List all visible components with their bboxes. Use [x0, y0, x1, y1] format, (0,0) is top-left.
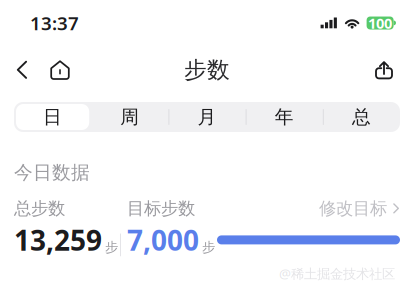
staticText: 100: [368, 13, 392, 33]
staticText: 13:37: [30, 11, 79, 35]
button[interactable]: Back: [5, 48, 39, 92]
button[interactable]: Share: [367, 48, 401, 92]
staticText: @稀土掘金技术社区: [279, 264, 395, 282]
staticText: 周: [120, 105, 139, 128]
staticText: 步: [105, 239, 118, 255]
button[interactable]: 周: [91, 102, 168, 132]
staticText: 步数: [184, 56, 230, 84]
staticText: 今日数据: [14, 161, 90, 184]
button[interactable]: 总: [323, 102, 400, 132]
button[interactable]: 修改目标: [319, 198, 400, 219]
staticText: 目标步数: [127, 198, 195, 219]
staticText: 修改目标: [319, 198, 387, 219]
staticText: 总步数: [14, 198, 65, 219]
button[interactable]: 年: [246, 102, 323, 132]
button[interactable]: 月: [168, 102, 246, 132]
button[interactable]: 日: [14, 102, 91, 132]
staticText: 总: [352, 105, 371, 128]
staticText: 年: [275, 105, 294, 128]
staticText: 7,000: [127, 221, 199, 258]
staticText: 13,259: [14, 221, 102, 258]
staticText: 月: [197, 105, 216, 128]
staticText: 日: [43, 105, 62, 128]
button[interactable]: Home: [39, 48, 81, 92]
staticText: 步: [202, 239, 215, 255]
